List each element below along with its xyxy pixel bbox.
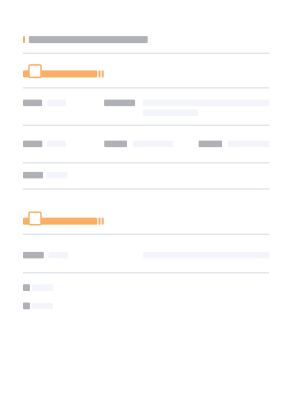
button[interactable]	[23, 252, 269, 258]
button[interactable]	[23, 302, 269, 309]
button[interactable]	[23, 65, 269, 77]
button[interactable]	[23, 36, 269, 43]
button[interactable]	[23, 141, 269, 147]
button[interactable]	[23, 212, 269, 225]
button[interactable]	[23, 284, 269, 291]
button[interactable]	[23, 172, 269, 178]
button[interactable]	[23, 100, 269, 116]
